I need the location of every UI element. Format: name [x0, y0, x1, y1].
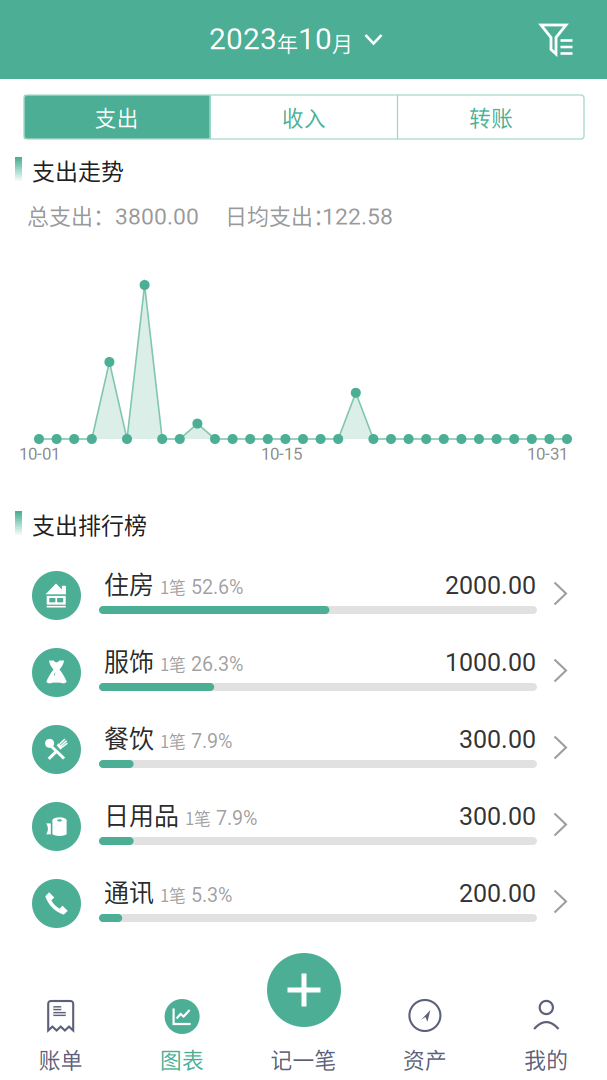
staticText: 1笔 — [185, 805, 211, 830]
staticText: 1000.00 — [445, 648, 536, 677]
staticText: 122.58 — [322, 203, 393, 230]
button[interactable]: 记一笔 — [243, 988, 364, 1080]
staticText: 图表 — [160, 1043, 204, 1074]
staticText: 通讯 — [104, 873, 154, 909]
staticText: 资产 — [403, 1043, 447, 1074]
staticText: 服饰 — [104, 642, 154, 678]
staticText: 住房 — [104, 565, 154, 601]
button[interactable]: 图表 — [121, 988, 243, 1080]
staticText: 2023年10月 — [209, 22, 353, 57]
button[interactable]: 餐饮 — [0, 711, 607, 788]
staticText: 总支出： — [27, 199, 115, 231]
staticText: 26.3% — [191, 653, 243, 676]
button[interactable]: 支出 — [24, 95, 210, 139]
staticText: 日用品 — [104, 796, 179, 832]
staticText: 支出走势 — [32, 153, 124, 187]
staticText: 7.9% — [191, 730, 232, 753]
staticText: 1笔 — [160, 882, 186, 907]
staticText: 7.9% — [216, 807, 257, 830]
staticText: 3800.00 — [115, 203, 199, 230]
staticText: 日均支出： — [225, 199, 335, 231]
staticText: 2000.00 — [445, 571, 536, 600]
button[interactable]: 账单 — [0, 988, 121, 1080]
button[interactable]: 资产 — [364, 988, 486, 1080]
staticText: 1笔 — [160, 651, 186, 676]
staticText: 1笔 — [160, 728, 186, 753]
button[interactable]: 日用品 — [0, 788, 607, 865]
staticText: 我的 — [524, 1043, 568, 1074]
staticText: 支出排行榜 — [32, 507, 147, 541]
staticText: 10-01 — [19, 444, 60, 464]
staticText: 10-31 — [527, 444, 568, 464]
staticText: 转账 — [469, 101, 513, 132]
button[interactable]: Filter — [527, 0, 587, 79]
button[interactable]: 通讯 — [0, 865, 607, 942]
staticText: 餐饮 — [104, 719, 154, 755]
staticText: 5.3% — [191, 884, 232, 907]
button[interactable]: 住房 — [0, 557, 607, 634]
staticText: 52.6% — [191, 576, 243, 599]
button[interactable]: 2023年10月 — [196, 0, 396, 79]
staticText: 300.00 — [459, 802, 536, 831]
staticText: 记一笔 — [270, 1043, 336, 1074]
button[interactable]: Add record — [267, 953, 341, 1027]
staticText: 1笔 — [160, 574, 186, 599]
staticText: 账单 — [39, 1043, 83, 1074]
button[interactable]: 我的 — [486, 988, 607, 1080]
button[interactable]: 服饰 — [0, 634, 607, 711]
staticText: 10-15 — [261, 444, 302, 464]
button[interactable]: 转账 — [398, 95, 584, 139]
staticText: 收入 — [282, 101, 326, 132]
staticText: 300.00 — [459, 725, 536, 754]
button[interactable]: 收入 — [211, 95, 397, 139]
staticText: 200.00 — [459, 879, 536, 908]
staticText: 支出 — [95, 101, 139, 132]
